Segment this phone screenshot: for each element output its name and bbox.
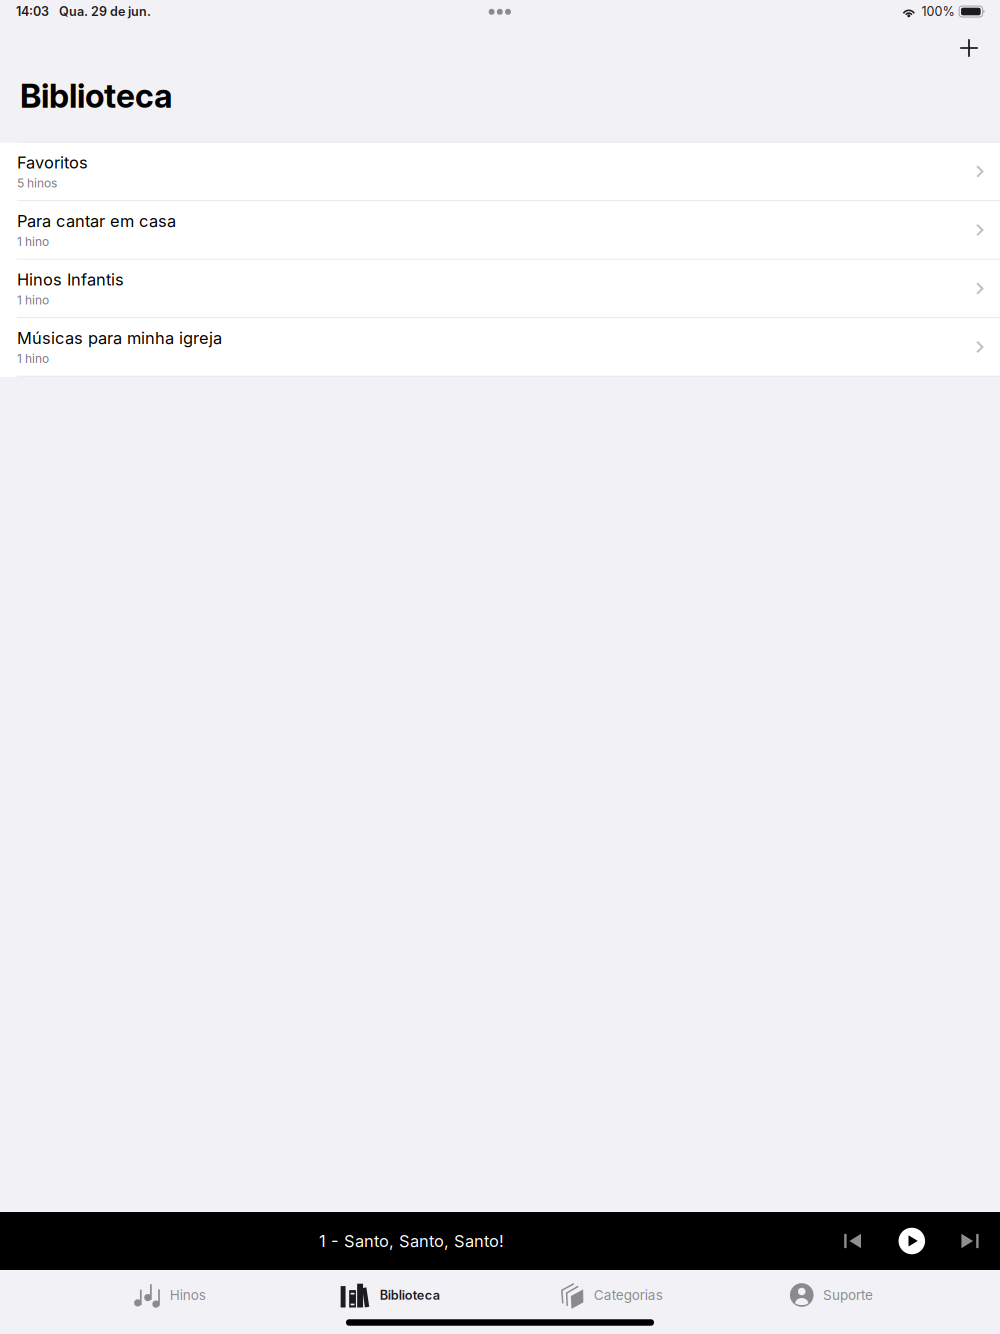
button[interactable]: Nova lista	[947, 30, 991, 66]
button[interactable]: Tocar	[892, 1221, 932, 1261]
staticText: 14:03	[16, 4, 49, 19]
staticText: 1 hino	[17, 293, 49, 307]
button[interactable]: Próxima	[950, 1221, 990, 1261]
staticText: 5 hinos	[17, 176, 57, 190]
button[interactable]: Categorias	[500, 1272, 721, 1318]
button[interactable]: Para cantar em casa	[0, 201, 1000, 260]
staticText: 1 hino	[17, 234, 49, 249]
staticText: Músicas para minha igreja	[17, 328, 222, 348]
staticText: Categorias	[594, 1287, 663, 1303]
staticText: 100%	[922, 4, 955, 19]
button[interactable]: Hinos Infantis	[0, 260, 1000, 318]
staticText: Qua. 29 de jun.	[59, 4, 151, 19]
staticText: Biblioteca	[20, 76, 173, 116]
staticText: Para cantar em casa	[17, 211, 176, 231]
button[interactable]: Anterior	[833, 1221, 873, 1261]
staticText: 1 - Santo, Santo, Santo!	[319, 1231, 504, 1251]
button[interactable]: Suporte	[721, 1272, 942, 1318]
button[interactable]: Favoritos	[0, 143, 1000, 201]
staticText: Favoritos	[17, 152, 88, 172]
button[interactable]: Hinos	[58, 1272, 279, 1318]
staticText: Hinos Infantis	[17, 269, 124, 289]
staticText: Suporte	[823, 1287, 873, 1303]
staticText: Hinos	[170, 1287, 206, 1303]
button[interactable]: Músicas para minha igreja	[0, 318, 1000, 377]
staticText: Biblioteca	[380, 1287, 440, 1303]
button[interactable]: Biblioteca	[279, 1272, 500, 1318]
staticText: 1 hino	[17, 351, 49, 366]
